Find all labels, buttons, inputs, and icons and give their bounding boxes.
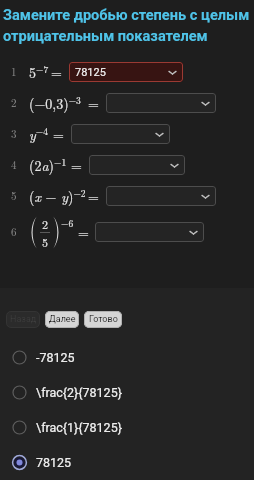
staticText: 78125 [36,455,72,470]
staticText: (x − y)−2 [29,186,86,206]
staticText: \frac{2}{78125} [36,385,122,400]
staticText: 5 [42,233,49,250]
button[interactable]: Answer selector [89,155,185,175]
staticText: Замените дробью степень с целым отрицате… [3,6,253,44]
staticText: 2 [42,215,49,232]
staticText: 78125 [75,66,106,79]
staticText: -78125 [36,350,75,365]
button[interactable]: 78125 [0,445,254,480]
button[interactable]: Готово [84,311,122,328]
button[interactable]: Answer selector [106,93,216,113]
staticText: = [71,155,82,175]
staticText: y−4 [29,124,48,144]
staticText: (−0,3)−3 [29,93,81,113]
button[interactable]: \frac{2}{78125} [0,375,254,410]
staticText: 4 [11,157,17,173]
staticText: = [53,124,64,144]
button[interactable]: -78125 [0,340,254,375]
staticText: = [88,93,99,113]
button[interactable]: Answer selector [69,62,183,82]
staticText: = [78,222,89,242]
button[interactable]: Далее [45,311,79,328]
staticText: Назад [10,314,37,325]
staticText: 6 [11,224,17,240]
button[interactable]: Answer selector [71,124,170,144]
staticText: −6 [61,216,74,229]
staticText: 3 [11,126,17,142]
staticText: = [88,186,99,206]
staticText: \frac{1}{78125} [36,420,122,435]
staticText: 5 [11,188,17,204]
button[interactable]: Answer selector [95,222,204,242]
button[interactable]: Answer selector [106,186,216,206]
staticText: (2a)−1 [29,155,67,175]
staticText: = [51,62,62,82]
staticText: Готово [89,314,118,325]
staticText: 1 [11,64,17,80]
staticText: Далее [49,314,76,325]
button[interactable]: Назад [6,311,40,328]
staticText: 2 [11,95,17,111]
staticText: 5−7 [29,62,49,82]
button[interactable]: \frac{1}{78125} [0,410,254,445]
